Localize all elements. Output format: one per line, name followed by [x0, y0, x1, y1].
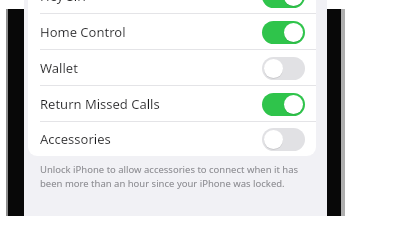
button[interactable]: Home Control: [28, 14, 316, 50]
button[interactable]: Accessories: [262, 128, 305, 151]
staticText: Unlock iPhone to allow accessories to co…: [40, 163, 310, 189]
button[interactable]: Wallet: [262, 57, 305, 80]
button[interactable]: Home Control: [262, 21, 305, 44]
button[interactable]: Hey Siri: [262, 0, 305, 8]
button[interactable]: Return Missed Calls: [262, 93, 305, 116]
button[interactable]: Return Missed Calls: [28, 86, 316, 122]
staticText: Accessories: [40, 130, 262, 148]
button[interactable]: Hey Siri: [28, 0, 316, 14]
button[interactable]: Wallet: [28, 50, 316, 86]
button[interactable]: Accessories: [28, 122, 316, 156]
staticText: Home Control: [40, 23, 262, 41]
staticText: Return Missed Calls: [40, 95, 262, 113]
staticText: Wallet: [40, 59, 262, 77]
staticText: Hey Siri: [40, 0, 262, 5]
